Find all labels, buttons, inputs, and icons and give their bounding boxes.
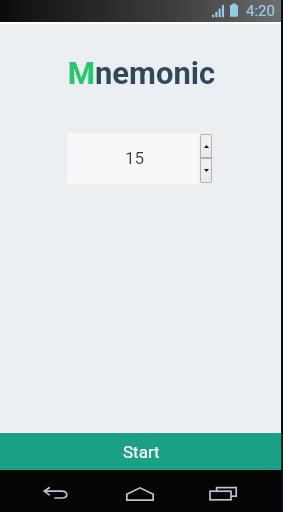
staticText: 4:20	[246, 2, 275, 20]
button[interactable]: 15	[67, 133, 199, 184]
staticText: Mnemonic	[0, 55, 283, 91]
button[interactable]: Home	[114, 477, 166, 511]
button[interactable]: Recent apps	[198, 477, 248, 511]
staticText: Start	[123, 442, 160, 462]
button[interactable]: Increase	[201, 135, 211, 157]
staticText: 15	[125, 148, 145, 168]
button[interactable]: Decrease	[201, 159, 211, 182]
button[interactable]: Start	[0, 433, 283, 470]
button[interactable]: Back	[32, 477, 82, 511]
